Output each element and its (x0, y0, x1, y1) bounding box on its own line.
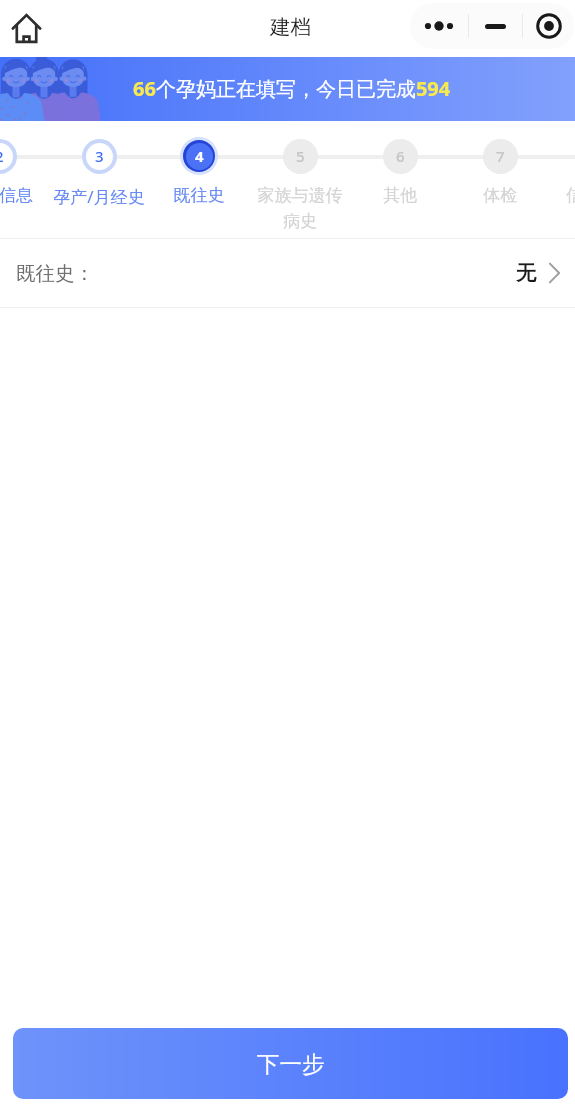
staticText: 信息确认 (540, 185, 575, 206)
button[interactable]: 5 (240, 121, 360, 231)
button[interactable]: Close (523, 3, 574, 49)
button[interactable]: 6 (340, 121, 460, 231)
button[interactable]: 8 (540, 121, 575, 231)
staticText: 家族与遗传 病史 (240, 185, 360, 231)
button[interactable]: 4 (139, 121, 259, 231)
button[interactable]: Minimize (469, 3, 522, 49)
staticText: 孕产/月经史 (39, 185, 159, 208)
staticText: 体检 (440, 185, 560, 206)
button[interactable]: 既往史： (0, 239, 575, 307)
button[interactable]: 3 (39, 121, 159, 231)
staticText: 下一步 (257, 1050, 325, 1078)
staticText: 6 (396, 146, 405, 166)
staticText: 7 (496, 146, 505, 166)
button[interactable]: 下一步 (13, 1028, 568, 1099)
staticText: 建档 (270, 14, 311, 40)
staticText: 既往史： (16, 261, 94, 286)
staticText: 5 (296, 146, 305, 166)
staticText: 4 (195, 146, 204, 166)
staticText: 3 (95, 146, 104, 166)
button[interactable]: 7 (440, 121, 560, 231)
staticText: 66个孕妈正在填写，今日已完成594 (133, 75, 451, 102)
button[interactable]: 2 (0, 121, 59, 231)
staticText: 无 (516, 261, 536, 286)
button[interactable]: Home (4, 6, 48, 50)
staticText: 既往史 (139, 185, 259, 206)
staticText: 其他 (340, 185, 460, 206)
staticText: 2 (0, 146, 4, 166)
button[interactable]: More options (410, 3, 468, 49)
staticText: 基本信息 (0, 185, 59, 206)
